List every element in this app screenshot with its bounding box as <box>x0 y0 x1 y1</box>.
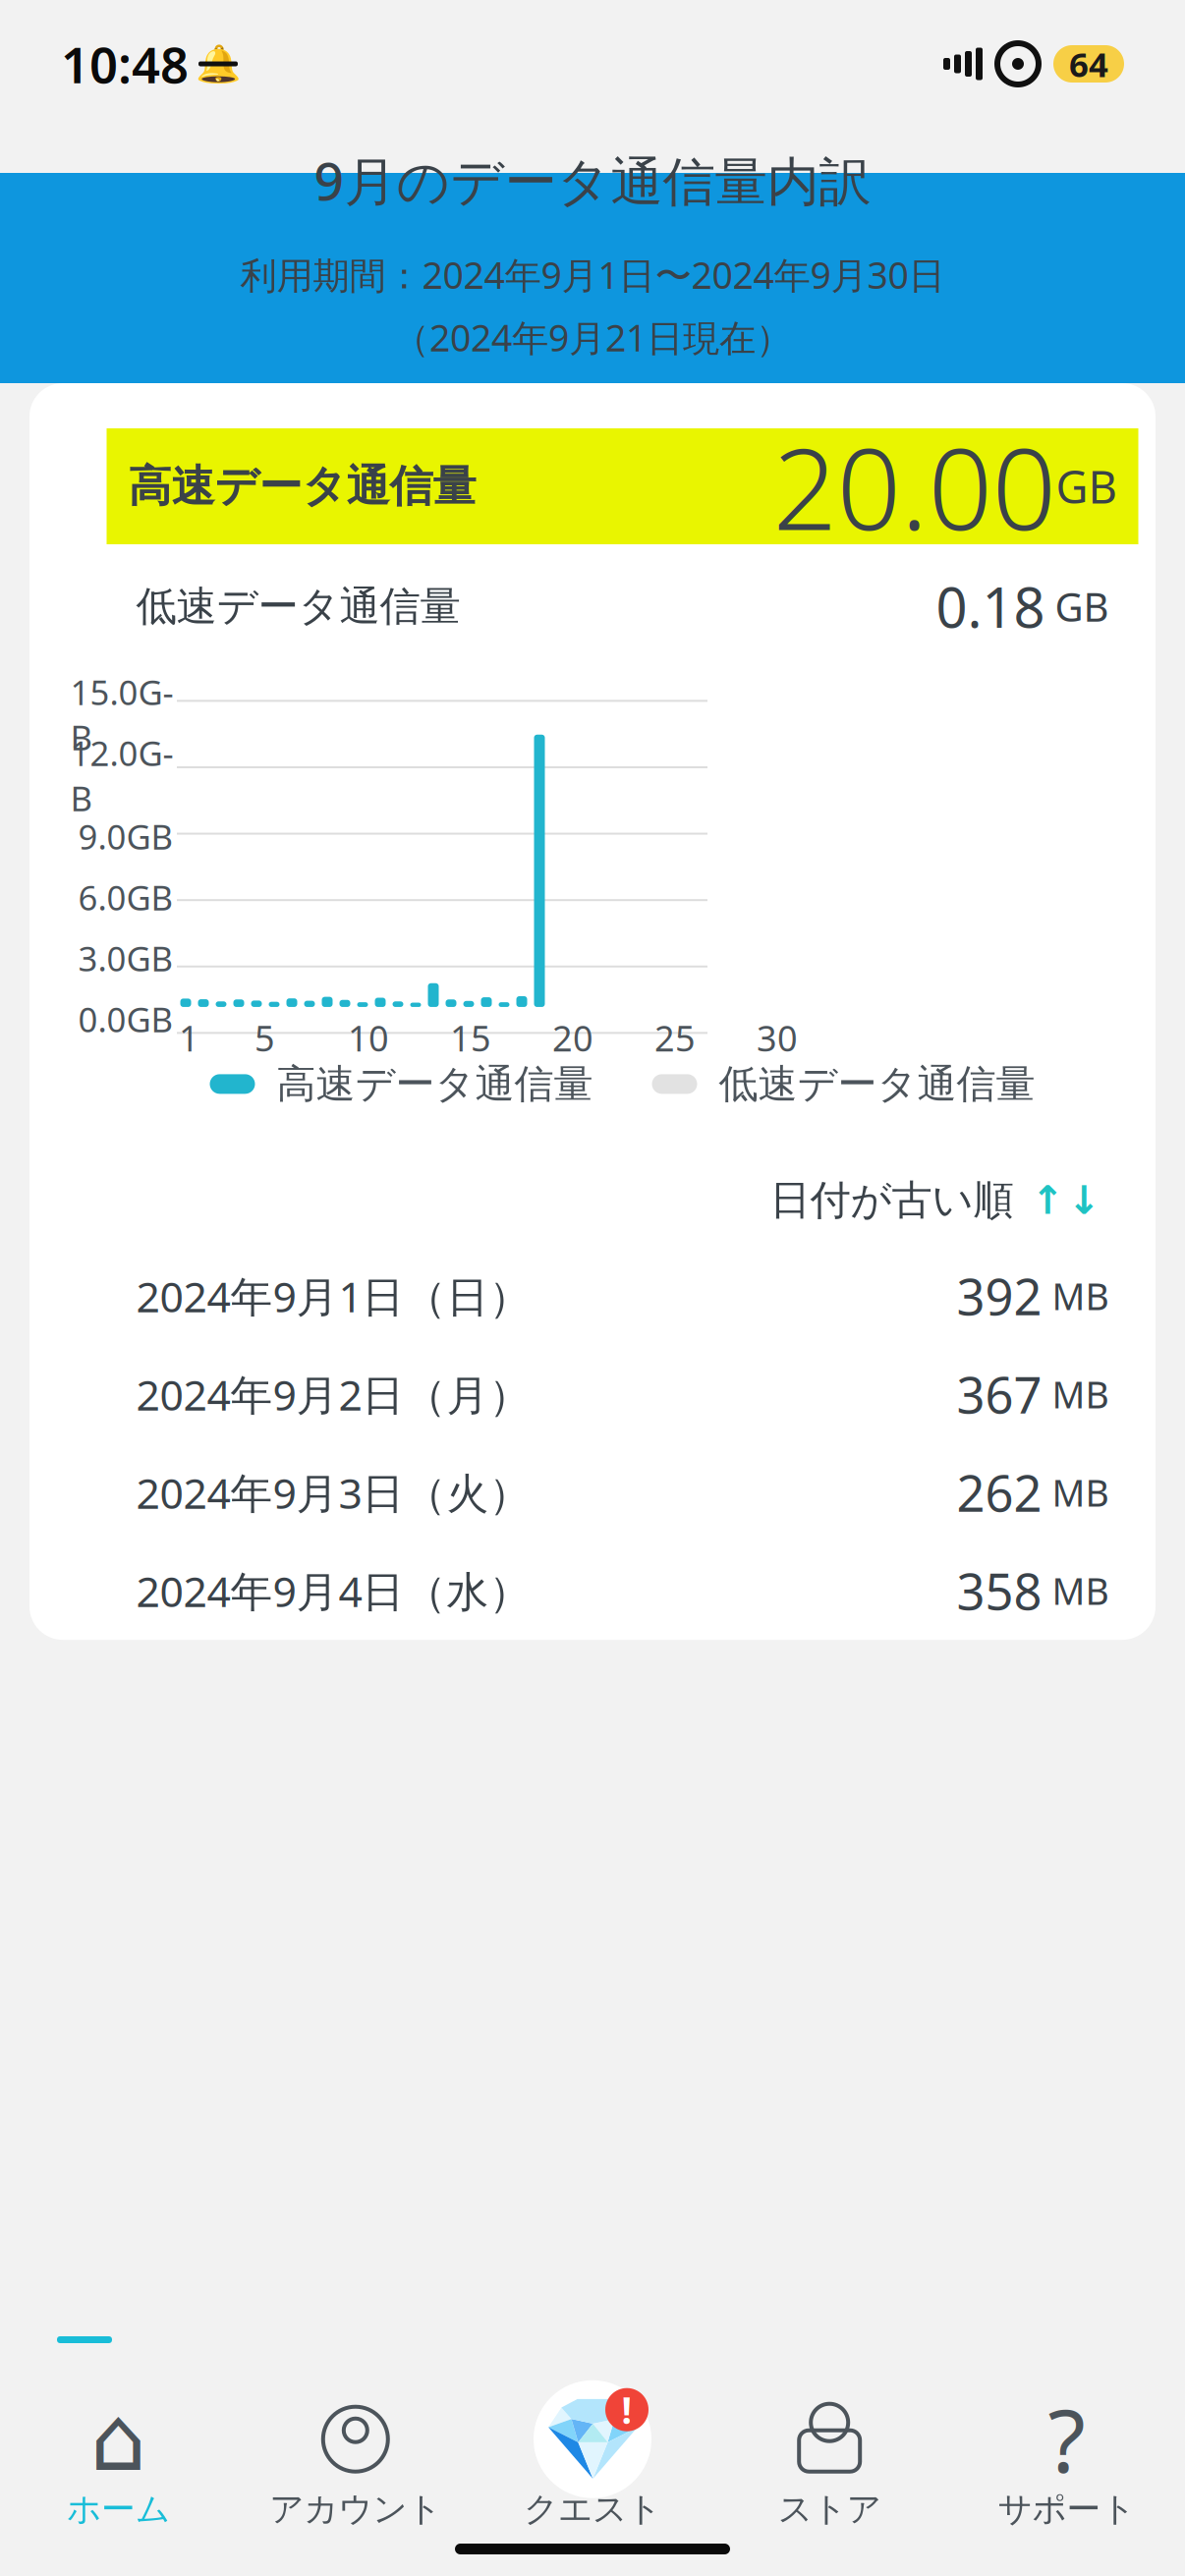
staticText: 64 <box>1069 41 1108 86</box>
staticText: 392 <box>957 1263 1042 1329</box>
staticText: 25 <box>654 1014 696 1061</box>
button[interactable]: 2024年9月2日（月） <box>59 1345 1185 1443</box>
staticText: クエスト <box>524 2488 661 2530</box>
button[interactable]: 2024年9月1日（日） <box>59 1247 1185 1345</box>
staticText: ? <box>1048 2382 1085 2497</box>
staticText: 2024年9月3日（火） <box>136 1465 531 1520</box>
staticText: 2024年9月1日（日） <box>136 1268 531 1324</box>
staticText: GB <box>1056 457 1117 516</box>
button[interactable]: 日付が古い順 <box>762 1166 1109 1235</box>
staticText: 30 <box>757 1014 798 1061</box>
staticText: 10 <box>348 1014 389 1061</box>
staticText: 2024年9月4日（水） <box>136 1563 531 1619</box>
staticText: MB <box>1042 1468 1109 1517</box>
staticText: 利用期間：2024年9月1日〜2024年9月30日 <box>240 250 945 299</box>
staticText: 358 <box>957 1558 1042 1624</box>
staticText: 💎 <box>542 2393 643 2486</box>
staticText: 3.0GB <box>78 936 173 981</box>
staticText: 262 <box>957 1459 1042 1526</box>
staticText: 20 <box>552 1014 593 1061</box>
staticText: MB <box>1042 1272 1109 1320</box>
staticText: MB <box>1042 1566 1109 1615</box>
staticText: サポート <box>998 2488 1135 2530</box>
button[interactable]: 2024年9月4日（水） <box>59 1542 1185 1640</box>
staticText: アカウント <box>270 2488 441 2530</box>
staticText: 15 <box>450 1014 491 1061</box>
staticText: 12.0GB <box>70 730 173 821</box>
staticText: 9月のデータ通信量内訳 <box>314 145 871 215</box>
staticText: 10:48 <box>61 31 189 97</box>
button[interactable]: 2024年9月3日（火） <box>59 1443 1185 1542</box>
staticText: 低速データ通信量 <box>136 581 460 631</box>
staticText: 367 <box>957 1361 1042 1427</box>
staticText: 0.0GB <box>78 997 173 1042</box>
staticText: 2024年9月2日（月） <box>136 1366 531 1422</box>
staticText: 6.0GB <box>78 875 173 920</box>
staticText: ↑ <box>1031 1178 1065 1223</box>
button[interactable]: アカウント <box>237 2392 474 2540</box>
staticText: 1 <box>179 1014 199 1061</box>
staticText: 15.0GB <box>70 669 173 760</box>
staticText: ! <box>621 2385 632 2434</box>
staticText: 9.0GB <box>78 814 173 859</box>
staticText: ⌂ <box>90 2389 147 2490</box>
staticText: 日付が古い順 <box>770 1175 1014 1225</box>
staticText: （2024年9月21日現在） <box>393 313 792 362</box>
button[interactable]: 💎 <box>474 2392 711 2540</box>
button[interactable]: ? <box>948 2392 1185 2540</box>
staticText: 高速データ通信量 <box>128 460 476 513</box>
staticText: ホーム <box>67 2488 170 2530</box>
staticText: ストア <box>778 2488 881 2530</box>
staticText: 5 <box>254 1014 275 1061</box>
staticText: MB <box>1042 1370 1109 1419</box>
staticText: 低速データ通信量 <box>719 1060 1035 1108</box>
button[interactable]: ⌂ <box>0 2392 237 2540</box>
staticText: ↓ <box>1068 1178 1101 1223</box>
staticText: 高速データ通信量 <box>277 1060 593 1108</box>
staticText: 🔔 <box>196 43 241 85</box>
staticText: 0.18 <box>936 570 1045 643</box>
button[interactable]: ストア <box>711 2392 948 2540</box>
staticText: 20.00 <box>773 412 1056 561</box>
staticText: GB <box>1045 580 1109 632</box>
